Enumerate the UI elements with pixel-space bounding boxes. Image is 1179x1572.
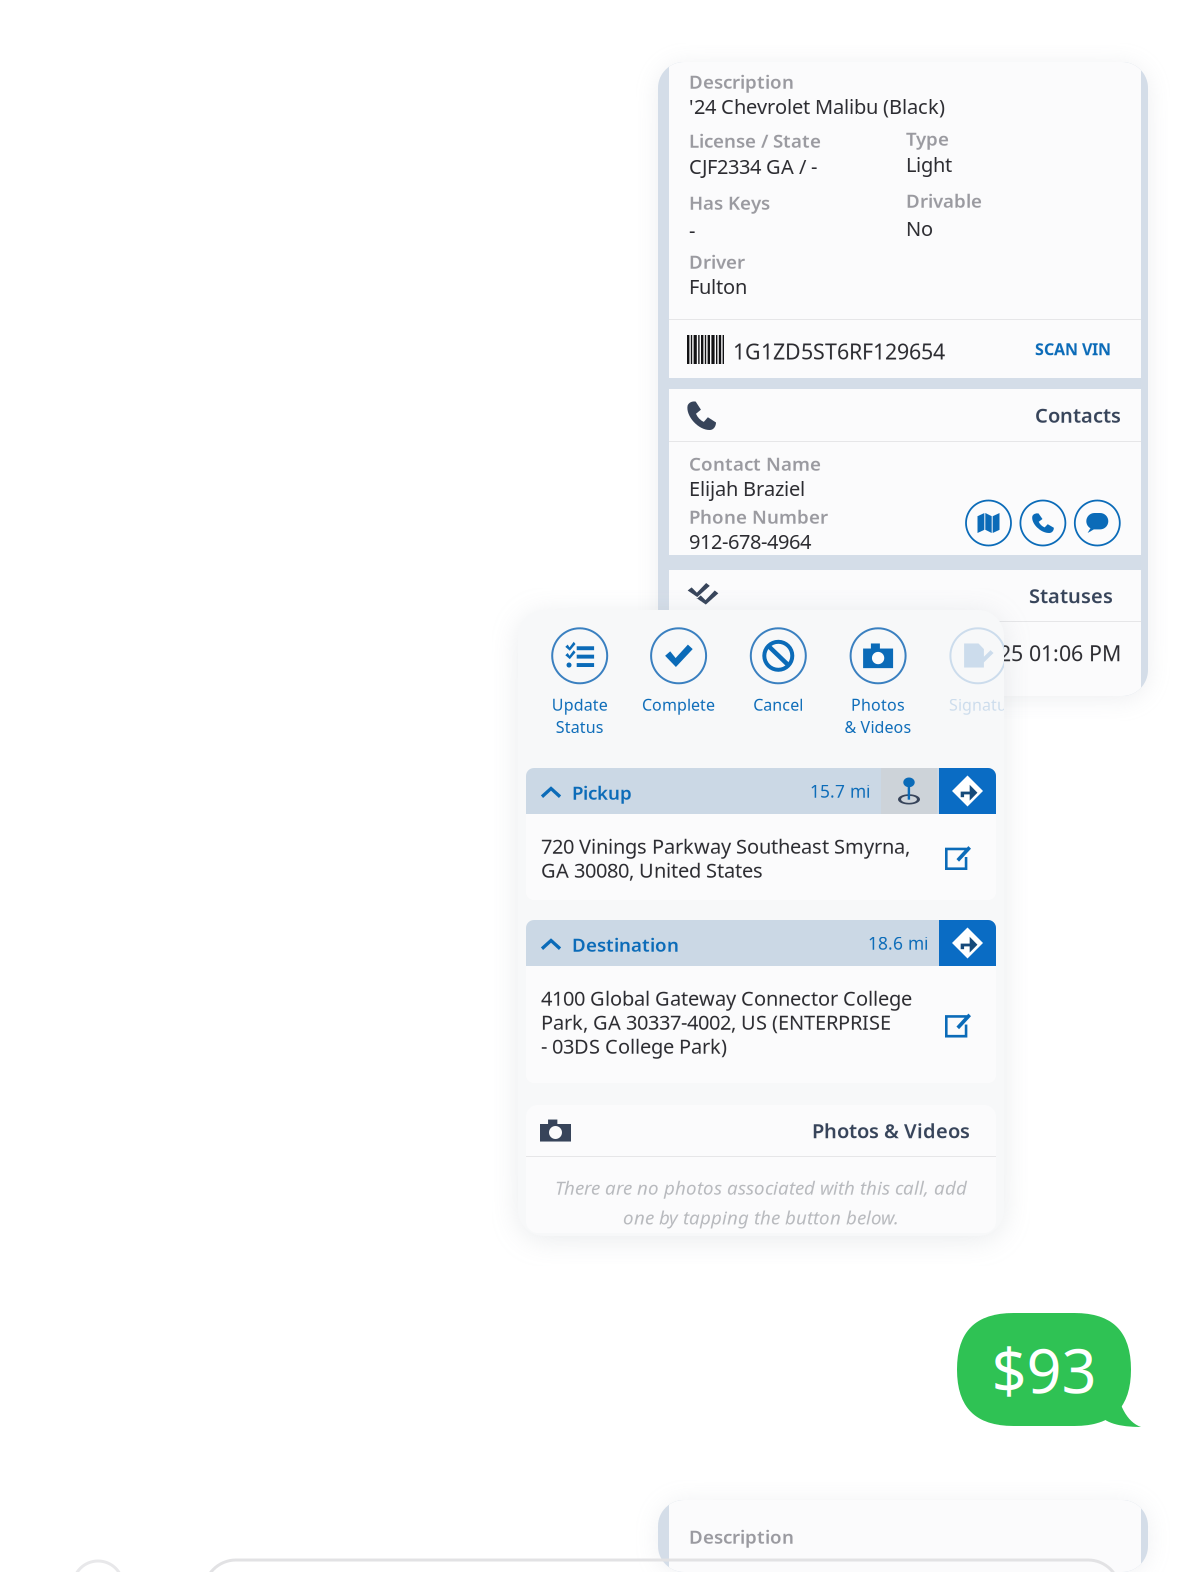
staticText: 720 Vinings Parkway Southeast Smyrna, <box>541 833 910 859</box>
staticText: Destination <box>572 932 679 957</box>
button[interactable]: Message <box>1075 500 1120 545</box>
staticText: Description <box>689 69 794 94</box>
staticText: - <box>689 217 695 244</box>
staticText: GA 30080, United States <box>541 857 763 883</box>
button[interactable]: Navigate <box>939 920 996 966</box>
staticText: Fulton <box>689 273 747 300</box>
button[interactable]: Complete <box>629 610 729 745</box>
staticText: Description <box>689 1524 794 1549</box>
staticText: 025 01:06 PM <box>987 639 1121 667</box>
staticText: No <box>906 215 933 242</box>
button[interactable]: Edit address <box>928 966 988 1083</box>
staticText: Elijah Braziel <box>689 475 805 502</box>
button[interactable]: Call <box>1020 500 1065 545</box>
staticText: Has Keys <box>689 190 770 215</box>
staticText: 18.6 mi <box>868 931 928 954</box>
staticText: Driver <box>689 249 745 274</box>
staticText: '24 Chevrolet Malibu (Black) <box>689 93 945 120</box>
staticText: Pickup <box>572 780 632 805</box>
staticText: Contact Name <box>689 451 821 476</box>
staticText: Contacts <box>1035 402 1121 428</box>
staticText: Phone Number <box>689 504 828 529</box>
staticText: Type <box>906 126 949 151</box>
staticText: Light <box>906 151 952 178</box>
button[interactable]: Navigate <box>939 768 996 814</box>
button[interactable]: Add attachment <box>70 1558 126 1572</box>
staticText: 1G1ZD5ST6RF129654 <box>733 337 945 365</box>
staticText: Complete <box>642 694 715 715</box>
staticText: Cancel <box>753 694 803 715</box>
staticText: There are no photos associated with this… <box>555 1175 967 1200</box>
button[interactable]: Cancel <box>728 610 828 745</box>
button[interactable]: Edit address <box>928 814 988 900</box>
staticText: License / State <box>689 128 821 153</box>
staticText: SCAN VIN <box>1035 338 1111 360</box>
staticText: Signatu <box>949 694 1007 715</box>
staticText: - 03DS College Park) <box>541 1033 727 1059</box>
staticText: one by tapping the button below. <box>623 1205 899 1230</box>
staticText: Status <box>556 716 604 737</box>
button[interactable]: Photos <box>828 610 928 745</box>
staticText: & Videos <box>845 716 912 737</box>
staticText: 912-678-4964 <box>689 528 811 555</box>
staticText: 4100 Global Gateway Connector College <box>541 985 912 1011</box>
staticText: Photos <box>851 694 905 715</box>
staticText: Update <box>552 694 608 715</box>
button[interactable]: Update <box>530 610 630 745</box>
staticText: Drivable <box>906 188 982 213</box>
staticText: Statuses <box>1029 582 1113 609</box>
button[interactable]: Message field <box>204 1560 1120 1572</box>
staticText: 15.7 mi <box>810 779 870 802</box>
staticText: CJF2334 GA / - <box>689 153 817 180</box>
staticText: $93 <box>991 1329 1096 1410</box>
button[interactable]: Directions <box>966 500 1011 545</box>
button[interactable]: Drop pin <box>881 768 937 814</box>
button[interactable]: SCAN VIN <box>971 320 1111 378</box>
staticText: Photos & Videos <box>812 1117 970 1144</box>
button[interactable]: Signatu <box>928 610 1028 745</box>
staticText: Park, GA 30337-4002, US (ENTERPRISE <box>541 1009 891 1035</box>
